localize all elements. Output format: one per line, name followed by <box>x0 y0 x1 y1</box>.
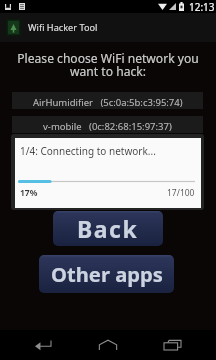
staticText: Back <box>77 213 139 244</box>
button[interactable]: v-mobile (0c:82:68:15:97:37) <box>12 116 203 133</box>
button[interactable]: Recent apps <box>149 330 195 360</box>
button[interactable]: AirHumidifier (5c:0a:5b:c3:95:74) <box>12 92 203 109</box>
staticText: Other apps <box>51 260 163 288</box>
staticText: Please choose WiFi network you want to h… <box>0 50 216 79</box>
button[interactable]: Back <box>53 211 163 246</box>
staticText: v-mobile (0c:82:68:15:97:37) <box>43 120 172 133</box>
button[interactable]: Other apps <box>39 255 174 293</box>
button[interactable]: Back <box>20 330 66 360</box>
button[interactable]: Home <box>85 330 131 360</box>
staticText: AirHumidifier (5c:0a:5b:c3:95:74) <box>33 96 183 109</box>
staticText: 17/100 <box>167 187 195 199</box>
staticText: 12:13 <box>189 0 215 13</box>
staticText: Wifi Hacker Tool <box>28 21 98 34</box>
staticText: 17% <box>20 187 38 199</box>
staticText: 1/4: Connecting to network... <box>20 144 156 158</box>
